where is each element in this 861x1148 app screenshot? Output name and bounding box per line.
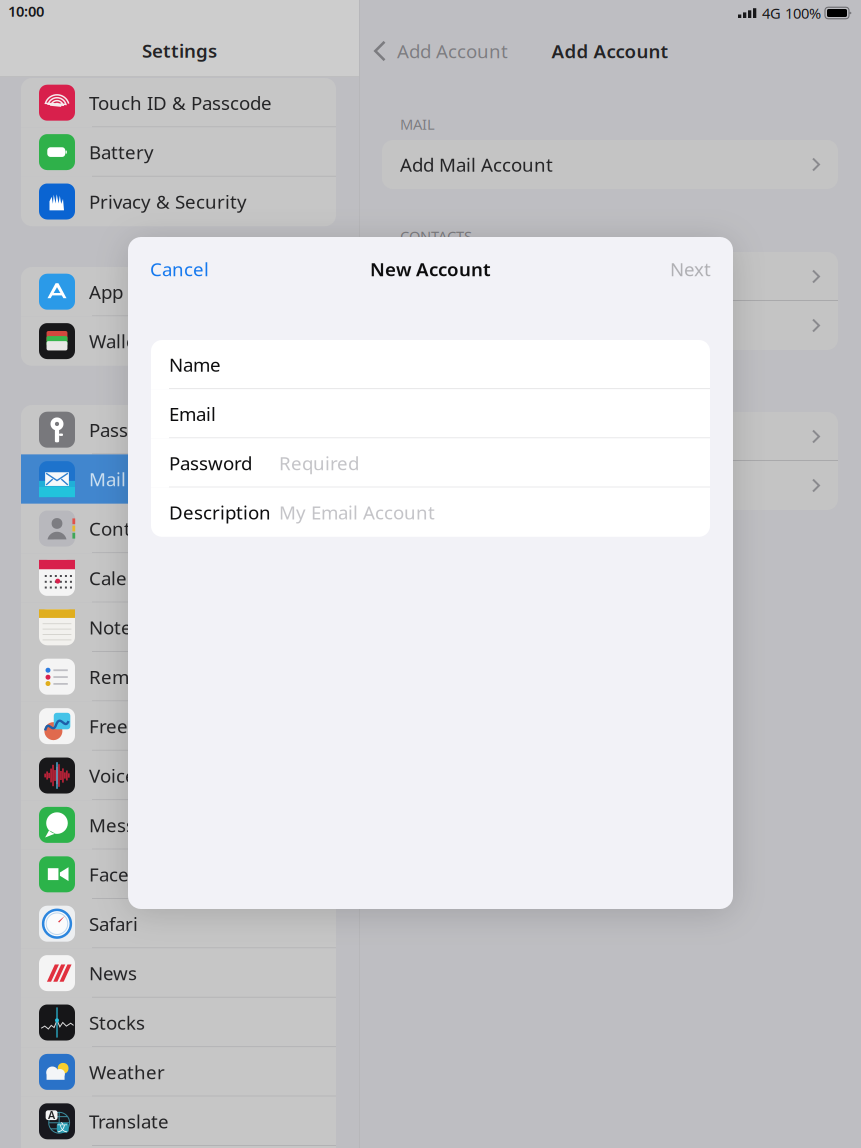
staticText: Notes [89, 615, 141, 640]
staticText: My Email Account [279, 500, 435, 525]
staticText: 文 [57, 1121, 68, 1134]
button[interactable]: Stocks [21, 998, 336, 1047]
staticText: Description [169, 500, 271, 525]
button[interactable]: Add Calendar Account [382, 412, 838, 461]
button[interactable]: Calendar [21, 553, 336, 603]
button[interactable]: Notes [21, 603, 336, 652]
button[interactable]: Wallet & Apple Pay [21, 316, 336, 366]
staticText: Add Account [551, 39, 668, 63]
staticText: Freeform [89, 714, 170, 738]
button[interactable]: Add Mail Account [382, 140, 838, 189]
button[interactable]: Next [670, 247, 733, 291]
staticText: News [89, 961, 137, 985]
staticText: Touch ID & Passcode [89, 90, 272, 115]
staticText: Add Account [397, 39, 508, 63]
staticText: Weather [89, 1059, 165, 1084]
button[interactable]: Add Contacts Account [382, 252, 838, 301]
button[interactable]: FaceTime [21, 850, 336, 899]
staticText: App Store [89, 279, 174, 304]
staticText: A [48, 1108, 55, 1122]
staticText: Voice Memos [89, 763, 206, 788]
button[interactable]: A [21, 1097, 336, 1146]
staticText: CONTACTS [400, 226, 472, 246]
staticText: Passwords [89, 417, 181, 442]
button[interactable]: Add Account [359, 30, 508, 72]
staticText: CALENDARS [400, 386, 481, 406]
staticText: Reminders [89, 664, 185, 689]
staticText: Add Mail Account [400, 152, 553, 177]
button[interactable]: Voice Memos [21, 751, 336, 800]
staticText: 4G 100% [762, 3, 821, 23]
button[interactable]: Battery [21, 127, 336, 177]
staticText: FaceTime [89, 862, 172, 887]
staticText: Translate [89, 1109, 169, 1134]
staticText: New Account [370, 257, 491, 281]
button[interactable]: Weather [21, 1047, 336, 1097]
staticText: Calendar [89, 565, 168, 590]
staticText: Cancel [150, 257, 209, 281]
staticText: Battery [89, 140, 154, 164]
staticText: Mail [89, 467, 126, 491]
staticText: Stocks [89, 1010, 145, 1035]
staticText: Password [169, 451, 252, 475]
button[interactable]: Touch ID & Passcode [21, 78, 336, 127]
button[interactable]: Privacy & Security [21, 177, 336, 226]
staticText: Messages [89, 812, 176, 837]
button[interactable]: Subscribed Contacts [382, 301, 838, 350]
staticText: Safari [89, 911, 138, 936]
staticText: Next [670, 257, 711, 281]
staticText: Email [169, 401, 216, 426]
staticText: Required [279, 451, 359, 475]
button[interactable]: Mail [21, 454, 336, 504]
button[interactable]: App Store [21, 267, 336, 316]
staticText: Privacy & Security [89, 189, 247, 214]
button[interactable]: Contacts [21, 504, 336, 553]
button[interactable]: Reminders [21, 652, 336, 701]
button[interactable]: Cancel [128, 247, 209, 291]
staticText: Add Contacts Account [400, 264, 593, 289]
button[interactable]: Messages [21, 800, 336, 850]
staticText: Contacts [89, 516, 166, 541]
button[interactable]: Passwords [21, 405, 336, 454]
button[interactable]: News [21, 948, 336, 998]
button[interactable]: Freeform [21, 701, 336, 751]
staticText: Settings [142, 38, 217, 63]
staticText: 10:00 [8, 1, 44, 21]
button[interactable]: Safari [21, 899, 336, 948]
staticText: Name [169, 352, 221, 377]
staticText: Wallet & Apple Pay [89, 329, 254, 353]
staticText: Add Calendar Account [400, 424, 595, 449]
button[interactable]: Add Subscribed Calendar [382, 461, 838, 510]
staticText: MAIL [400, 114, 435, 134]
